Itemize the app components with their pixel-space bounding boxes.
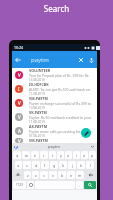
staticText: . [79,183,81,188]
button[interactable]: h [59,161,67,169]
staticText: Paytm never calls you asking for OTP or [29,129,92,134]
staticText: V [18,100,21,106]
staticText: V [18,114,21,120]
staticText: c [43,173,45,178]
staticText: V [18,72,21,78]
staticText: V [18,138,21,143]
button[interactable]: o [81,151,88,159]
staticText: k [80,163,82,168]
staticText: y [60,153,62,158]
staticText: VOLUNTEER [29,68,51,73]
button[interactable]: e [31,151,39,159]
button[interactable]: Back [12,54,24,66]
staticText: t [52,153,54,158]
staticText: f [44,163,46,168]
staticText: e [34,153,37,158]
staticText: z [27,173,29,178]
button[interactable]: c [40,171,48,179]
button[interactable]: d [32,161,40,169]
button[interactable]: p [89,151,96,159]
button[interactable]: v [49,171,57,179]
staticText: VK-PAYTM [29,110,47,115]
staticText: n [70,173,73,178]
button[interactable]: j [68,161,76,169]
staticText: a [17,163,20,168]
staticText: A [18,128,21,134]
button[interactable]: k [77,161,85,169]
staticText: j [72,163,73,168]
staticText: x [35,173,37,178]
staticText: Your Jio Prepaid plan of Rs. 399 for Re [29,73,89,78]
button[interactable]: r [40,151,48,159]
button[interactable]: Shift [13,171,23,179]
button[interactable]: w [22,151,30,159]
button[interactable]: n [67,171,75,179]
staticText: v [52,173,54,178]
button[interactable]: ?123 [13,181,26,189]
button[interactable]: V [12,138,97,143]
staticText: d [35,163,38,168]
staticText: 11-08-2019 [29,92,45,96]
staticText: s [26,163,28,168]
button[interactable]: q [13,151,21,159]
staticText: 11-08-2019 [29,120,45,124]
button[interactable]: Clear [76,55,86,65]
staticText: q [16,153,19,158]
button[interactable]: Backspace [85,171,96,179]
button[interactable]: b [58,171,66,179]
staticText: g [53,163,56,168]
staticText: r [43,153,45,158]
button[interactable]: z [24,171,31,179]
button[interactable]: a [15,161,22,169]
staticText: 07-08-2019 [29,134,45,138]
button[interactable]: V [12,110,97,124]
staticText: ID-HDFCBK [29,82,49,87]
button[interactable]: t [49,151,56,159]
button[interactable]: f [41,161,49,169]
button[interactable]: A [12,124,97,138]
staticText: i [76,153,77,158]
button[interactable]: V [12,68,97,82]
button[interactable]: paytm [12,143,97,150]
staticText: m [78,173,82,178]
staticText: 10-08-2019 [29,106,45,110]
staticText: w [25,153,28,158]
staticText: I [18,86,20,92]
staticText: Search [0,3,113,14]
button[interactable]: I [12,82,97,96]
button[interactable]: s [23,161,31,169]
staticText: 13-08-2019 [29,78,45,82]
button[interactable]: Search [84,181,96,189]
staticText: u [67,153,70,158]
button[interactable]: . [76,181,83,189]
button[interactable]: Voice search [86,55,96,65]
button[interactable]: V [12,96,97,110]
staticText: AX-PAYTM [29,124,48,129]
staticText: ?123 [16,183,23,187]
staticText: h [62,163,65,168]
staticText: o [83,153,86,158]
staticText: paytm [48,144,60,149]
button[interactable]: x [32,171,39,179]
staticText: paytm [31,56,49,64]
staticText: p [91,153,94,158]
staticText: b [61,173,64,178]
staticText: 10:24 [14,45,23,50]
button[interactable]: i [73,151,80,159]
staticText: Paytm recharge successful of Rs.399 to [29,101,91,106]
button[interactable]: l [86,161,94,169]
button[interactable]: Compose [81,128,91,138]
button[interactable]: y [57,151,64,159]
button[interactable]: Emoji [27,181,34,189]
staticText: ALERT: You've got Rs.100 cash back on [29,87,90,92]
button[interactable]: u [65,151,72,159]
staticText: VM-PAYTM [29,138,48,143]
button[interactable]: m [76,171,84,179]
button[interactable]: g [50,161,58,169]
staticText: l [90,163,91,168]
staticText: Paytm: Rs.50 cashback credited to your [29,115,92,120]
staticText: VM-PAYTM [29,96,48,101]
